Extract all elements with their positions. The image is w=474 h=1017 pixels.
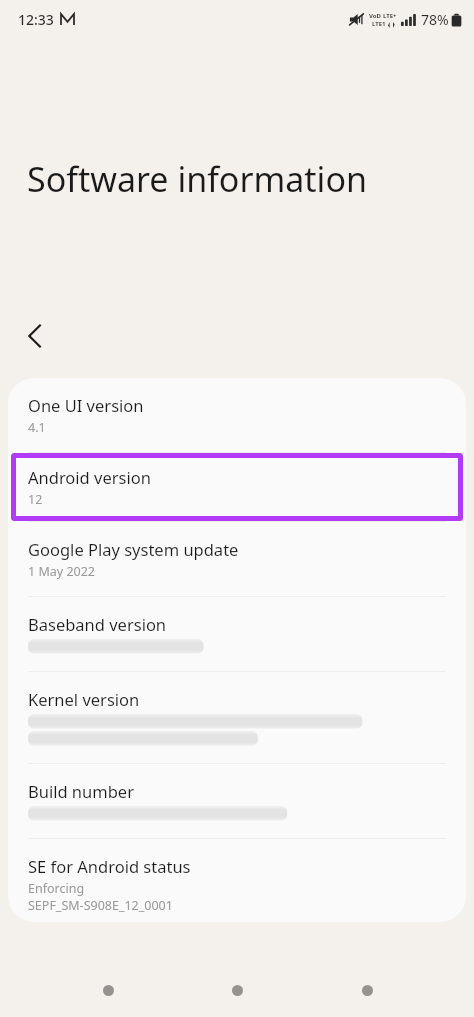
staticText: 78% [421,10,449,29]
button[interactable]: One UI version [8,378,466,452]
button[interactable]: Android version [11,453,463,521]
button[interactable]: SE for Android status [8,839,466,922]
button[interactable]: Recents [86,968,130,1012]
staticText: Enforcing [28,880,85,897]
staticText: SE for Android status [28,855,191,877]
staticText: Kernel version [28,688,140,710]
staticText: 1 May 2022 [28,563,95,580]
staticText: Software information [27,156,367,202]
staticText: LTE1 [372,20,386,28]
staticText: VoD [369,12,381,20]
staticText: Android version [28,466,151,488]
staticText: SEPF_SM-S908E_12_0001 [28,897,173,914]
staticText: Baseband version [28,613,167,635]
button[interactable]: Home [215,968,259,1012]
staticText: 12:33 [18,10,54,29]
staticText: Build number [28,780,134,802]
button[interactable]: Google Play system update [8,522,466,596]
button[interactable]: Back [8,310,60,362]
staticText: 12 [28,491,43,508]
button[interactable]: Back [345,968,389,1012]
staticText: LTE+ [383,12,397,20]
button[interactable]: Build number [8,764,466,838]
staticText: One UI version [28,394,144,416]
staticText: Google Play system update [28,538,239,560]
button[interactable]: Kernel version [8,672,466,763]
staticText: 4.1 [28,419,46,436]
button[interactable]: Baseband version [8,597,466,671]
